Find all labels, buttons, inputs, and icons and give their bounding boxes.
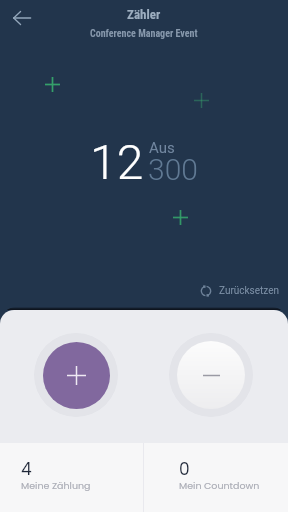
staticText: Aus (149, 139, 175, 157)
staticText: 300 (148, 152, 198, 187)
staticText: Zähler (127, 7, 161, 22)
button[interactable]: 4 (0, 443, 143, 512)
button[interactable]: Back (4, 0, 40, 36)
staticText: Meine Zählung (21, 479, 91, 492)
staticText: 4 (21, 457, 32, 481)
staticText: 0 (179, 457, 190, 481)
button[interactable]: 0 (144, 443, 288, 512)
button[interactable]: Decrement (169, 333, 253, 417)
staticText: 12 (90, 134, 144, 190)
button[interactable]: Zurücksetzen (195, 281, 284, 301)
staticText: Conference Manager Event (90, 28, 198, 40)
button[interactable]: Increment (34, 333, 118, 417)
staticText: Mein Countdown (179, 479, 260, 492)
staticText: Zurücksetzen (219, 285, 280, 297)
